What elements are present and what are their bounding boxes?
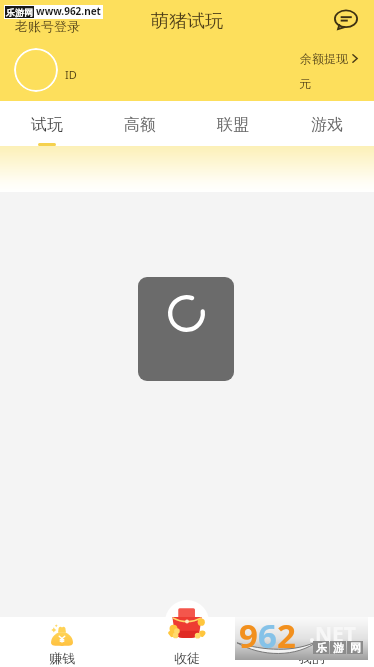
- button[interactable]: 联盟: [186, 101, 280, 146]
- button[interactable]: [14, 48, 58, 92]
- button[interactable]: 我的: [249, 617, 374, 667]
- staticText: 乐: [316, 641, 327, 654]
- staticText: 乐游网: [6, 7, 33, 18]
- staticText: www.962.net: [36, 4, 101, 18]
- staticText: 联盟: [217, 115, 249, 135]
- staticText: 元: [299, 76, 311, 91]
- staticText: 6: [258, 613, 277, 656]
- staticText: 游: [333, 641, 344, 654]
- staticText: 我的: [299, 650, 325, 666]
- button[interactable]: 赚钱: [0, 617, 124, 667]
- staticText: 赚钱: [49, 650, 75, 666]
- staticText: 收徒: [174, 650, 200, 666]
- staticText: 试玩: [31, 115, 63, 135]
- button[interactable]: 消息: [331, 5, 361, 35]
- staticText: 9: [239, 613, 258, 656]
- button[interactable]: 高额: [93, 101, 186, 146]
- staticText: 网: [350, 641, 361, 654]
- button[interactable]: 余额提现: [300, 51, 358, 66]
- button[interactable]: 收徒: [124, 617, 249, 667]
- button[interactable]: 游戏: [280, 101, 374, 146]
- button[interactable]: 收徒: [165, 600, 209, 644]
- staticText: ID: [65, 67, 77, 82]
- staticText: 萌猪试玩: [151, 10, 223, 33]
- staticText: 游戏: [311, 115, 343, 135]
- staticText: 余额提现: [300, 51, 348, 66]
- staticText: 高额: [124, 115, 156, 135]
- staticText: .NET: [309, 620, 356, 649]
- button[interactable]: 老账号登录: [15, 18, 80, 34]
- button[interactable]: 试玩: [0, 101, 93, 146]
- staticText: 2: [277, 613, 296, 656]
